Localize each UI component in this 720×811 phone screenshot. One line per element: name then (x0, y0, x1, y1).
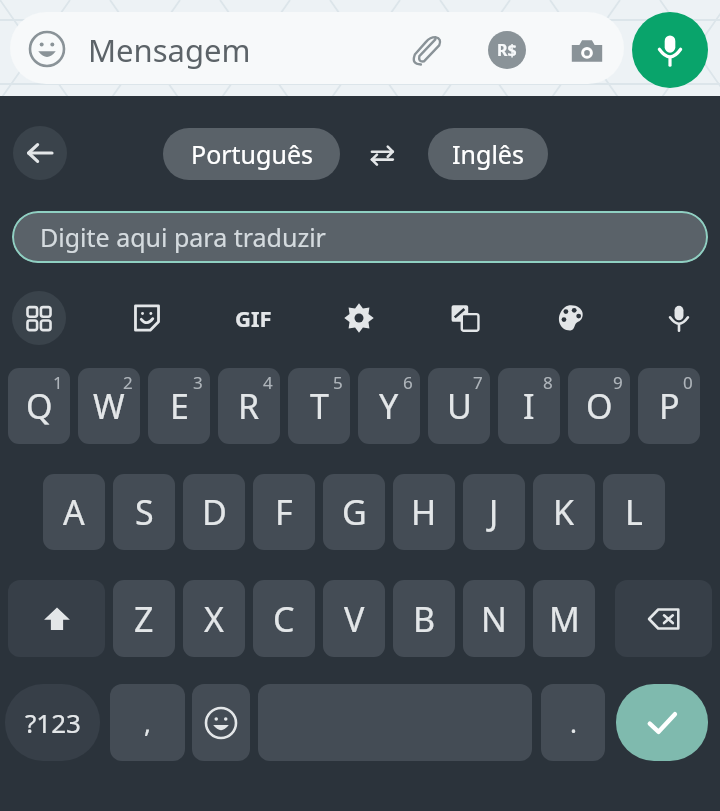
staticText: A (63, 489, 85, 535)
button[interactable]: Apps (12, 291, 66, 345)
button[interactable]: H (393, 474, 455, 550)
staticText: U (447, 383, 472, 429)
button[interactable]: Translate (438, 291, 492, 345)
button[interactable]: L (603, 474, 665, 550)
button[interactable]: Stickers (120, 291, 174, 345)
button[interactable]: Y (358, 368, 420, 444)
button[interactable]: Backspace (615, 580, 712, 657)
button[interactable]: O (568, 368, 630, 444)
staticText: R$ (497, 39, 517, 61)
staticText: 6 (403, 371, 413, 394)
button[interactable]: G (323, 474, 385, 550)
staticText: O (586, 383, 613, 429)
button[interactable]: Back (13, 126, 67, 180)
button[interactable]: R (218, 368, 280, 444)
button[interactable]: Português (163, 128, 340, 180)
button[interactable]: M (533, 580, 595, 657)
button[interactable]: Settings (332, 291, 386, 345)
button[interactable]: Camera (568, 32, 606, 70)
staticText: GIF (235, 303, 272, 333)
button[interactable]: Voice message (632, 12, 708, 88)
staticText: E (170, 383, 189, 429)
button[interactable]: U (428, 368, 490, 444)
staticText: 3 (193, 371, 203, 394)
staticText: T (310, 383, 329, 429)
button[interactable]: E (148, 368, 210, 444)
button[interactable]: N (463, 580, 525, 657)
button[interactable]: Voice input (652, 291, 706, 345)
staticText: G (342, 489, 367, 535)
button[interactable]: I (498, 368, 560, 444)
button[interactable]: Digite aqui para traduzir (12, 211, 708, 263)
staticText: M (549, 596, 580, 642)
button[interactable]: S (113, 474, 175, 550)
button[interactable]: Z (113, 580, 175, 657)
staticText: 9 (613, 371, 623, 394)
button[interactable]: C (253, 580, 315, 657)
button[interactable]: K (533, 474, 595, 550)
staticText: Z (134, 596, 154, 642)
staticText: N (481, 596, 507, 642)
button[interactable]: Themes (544, 291, 598, 345)
button[interactable]: Attach (408, 31, 446, 69)
button[interactable]: GIF (226, 291, 280, 345)
staticText: Inglês (452, 137, 524, 171)
button[interactable]: Q (8, 368, 70, 444)
button[interactable]: Payment (488, 31, 526, 69)
button[interactable]: D (183, 474, 245, 550)
button[interactable]: , (110, 684, 185, 761)
button[interactable]: X (183, 580, 245, 657)
staticText: H (411, 489, 437, 535)
button[interactable]: T (288, 368, 350, 444)
staticText: I (523, 383, 535, 429)
button[interactable]: Emoji (192, 684, 250, 761)
staticText: 0 (683, 371, 693, 394)
staticText: V (344, 596, 365, 642)
staticText: R (238, 383, 260, 429)
staticText: Português (191, 137, 313, 171)
staticText: 8 (543, 371, 553, 394)
staticText: 2 (123, 371, 133, 394)
staticText: . (570, 705, 577, 740)
button[interactable]: Shift (8, 580, 105, 657)
staticText: 4 (263, 371, 273, 394)
staticText: 5 (333, 371, 343, 394)
staticText: , (144, 705, 151, 740)
staticText: 1 (53, 371, 63, 394)
staticText: B (413, 596, 436, 642)
staticText: F (275, 489, 293, 535)
staticText: S (135, 489, 154, 535)
staticText: X (204, 596, 224, 642)
button[interactable]: V (323, 580, 385, 657)
button[interactable]: F (253, 474, 315, 550)
button[interactable]: P (638, 368, 700, 444)
staticText: ?123 (25, 705, 81, 740)
staticText: Digite aqui para traduzir (40, 220, 326, 254)
staticText: 7 (473, 371, 483, 394)
button[interactable]: Emoji (28, 30, 66, 68)
button[interactable]: Swap languages (364, 138, 400, 174)
button[interactable]: A (43, 474, 105, 550)
staticText: Mensagem (88, 29, 251, 71)
staticText: J (489, 489, 499, 535)
staticText: C (273, 596, 295, 642)
staticText: K (553, 489, 575, 535)
button[interactable]: Inglês (428, 128, 548, 180)
button[interactable]: J (463, 474, 525, 550)
button[interactable]: W (78, 368, 140, 444)
staticText: L (625, 489, 643, 535)
staticText: D (202, 489, 227, 535)
button[interactable]: . (541, 684, 605, 761)
staticText: Y (379, 383, 399, 429)
staticText: P (659, 383, 680, 429)
staticText: Q (26, 383, 53, 429)
staticText: W (93, 383, 125, 429)
button[interactable]: ?123 (5, 684, 100, 761)
button[interactable]: Enter (616, 684, 708, 761)
button[interactable]: B (393, 580, 455, 657)
button[interactable]: Emoji (10, 12, 624, 84)
